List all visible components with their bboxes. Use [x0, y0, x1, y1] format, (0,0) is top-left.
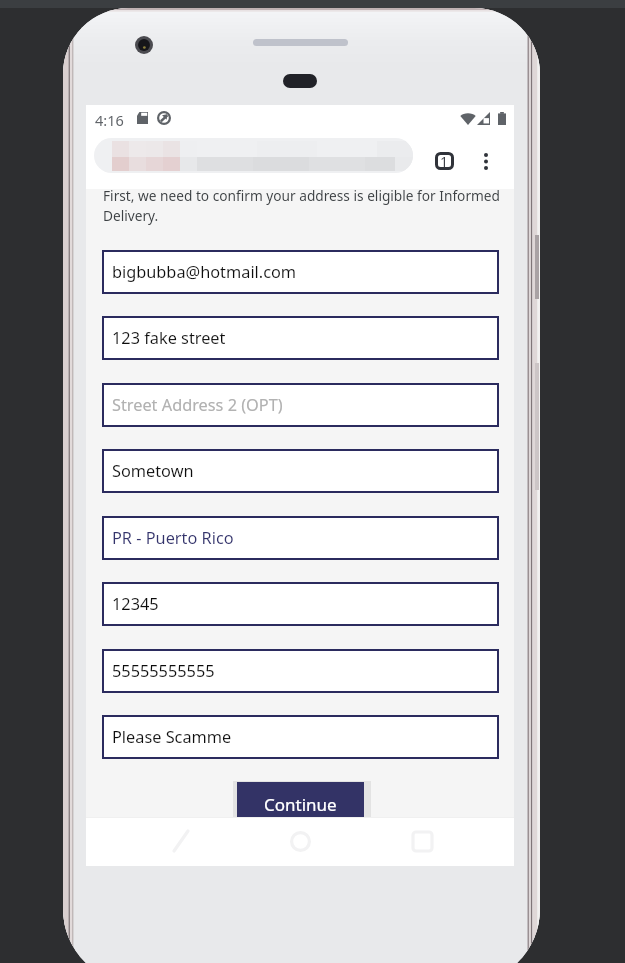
staticText: bigbubba@hotmail.com — [112, 261, 297, 283]
staticText: 123 fake street — [112, 327, 226, 349]
staticText: Please Scamme — [112, 726, 232, 748]
button[interactable]: Recents — [399, 818, 445, 864]
staticText: 1 — [440, 152, 449, 170]
button[interactable]: Sometown — [102, 449, 499, 493]
button[interactable]: bigbubba@hotmail.com — [102, 250, 499, 294]
staticText: 55555555555 — [112, 660, 215, 682]
staticText: Sometown — [112, 460, 194, 482]
staticText: Street Address 2 (OPT) — [112, 394, 283, 416]
staticText: Continue — [264, 793, 337, 816]
staticText: PR - Puerto Rico — [112, 527, 234, 549]
button[interactable]: Continue — [237, 782, 364, 827]
button[interactable]: Please Scamme — [102, 715, 499, 759]
button[interactable]: 123 fake street — [102, 316, 499, 360]
staticText: 4:16 — [95, 110, 124, 130]
button[interactable]: PR - Puerto Rico — [102, 516, 499, 560]
staticText: First, we need to confirm your address i… — [103, 186, 523, 225]
button[interactable]: Street Address 2 (OPT) — [102, 383, 499, 427]
button[interactable]: Address bar — [94, 138, 413, 173]
button[interactable]: Home — [277, 818, 323, 864]
button[interactable]: 55555555555 — [102, 649, 499, 693]
button[interactable]: More options — [471, 146, 501, 176]
button[interactable]: Tabs — [429, 146, 459, 176]
button[interactable]: 12345 — [102, 582, 499, 626]
staticText: 12345 — [112, 593, 159, 615]
